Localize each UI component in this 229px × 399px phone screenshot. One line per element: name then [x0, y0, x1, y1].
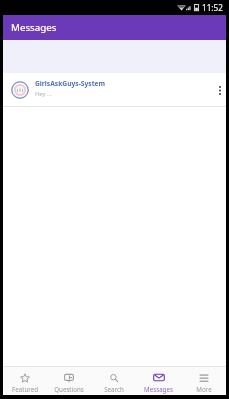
staticText: GirlsAskGuys-System — [35, 79, 106, 88]
staticText: Messages — [144, 385, 173, 393]
staticText: More — [196, 385, 212, 393]
button[interactable]: Featured — [3, 370, 47, 395]
button[interactable]: More options — [213, 80, 226, 100]
button[interactable]: Questions — [47, 370, 91, 395]
staticText: Questions — [54, 385, 84, 393]
staticText: Messages — [11, 21, 57, 34]
staticText: Search — [104, 385, 124, 393]
staticText: Hey ... — [35, 90, 52, 98]
staticText: 11:52 — [202, 2, 223, 13]
button[interactable]: Messages — [136, 370, 181, 395]
button[interactable]: Search — [91, 370, 136, 395]
button[interactable]: GirlsAskGuys-System — [3, 73, 226, 106]
staticText: Featured — [12, 385, 38, 393]
button[interactable]: More — [181, 370, 226, 395]
